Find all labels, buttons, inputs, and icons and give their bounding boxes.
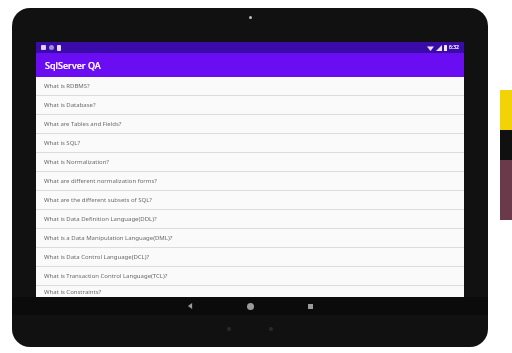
staticText: What are Tables and Fields?: [44, 120, 122, 128]
staticText: 6:32: [449, 44, 459, 51]
button[interactable]: What is Constraints?: [36, 286, 464, 297]
button[interactable]: What is Data Definition Language(DDL)?: [36, 210, 464, 228]
button[interactable]: What are the different subsets of SQL?: [36, 191, 464, 209]
staticText: What is RDBMS?: [44, 82, 90, 90]
button[interactable]: What is a Data Manipulation Language(DML…: [36, 229, 464, 247]
button[interactable]: What is Normalization?: [36, 153, 464, 171]
button[interactable]: Recent apps: [280, 297, 340, 315]
button[interactable]: What are different normalization forms?: [36, 172, 464, 190]
staticText: What are the different subsets of SQL?: [44, 196, 152, 204]
staticText: What is Constraints?: [44, 288, 102, 296]
staticText: What is Transaction Control Language(TCL…: [44, 272, 168, 280]
button[interactable]: What is Data Control Language(DCL)?: [36, 248, 464, 266]
staticText: What is a Data Manipulation Language(DML…: [44, 234, 173, 242]
staticText: What are different normalization forms?: [44, 177, 157, 185]
staticText: SqlServer QA: [45, 59, 101, 71]
button[interactable]: What is RDBMS?: [36, 77, 464, 95]
button[interactable]: SqlServer QA: [36, 53, 464, 77]
button[interactable]: What are Tables and Fields?: [36, 115, 464, 133]
staticText: What is Database?: [44, 101, 96, 109]
button[interactable]: What is Database?: [36, 96, 464, 114]
staticText: What is Data Definition Language(DDL)?: [44, 215, 157, 223]
button[interactable]: Back: [160, 297, 220, 315]
button[interactable]: What is Transaction Control Language(TCL…: [36, 267, 464, 285]
staticText: What is Normalization?: [44, 158, 109, 166]
button[interactable]: Home: [220, 297, 280, 315]
staticText: What is SQL?: [44, 139, 81, 147]
button[interactable]: What is SQL?: [36, 134, 464, 152]
staticText: What is Data Control Language(DCL)?: [44, 253, 150, 261]
